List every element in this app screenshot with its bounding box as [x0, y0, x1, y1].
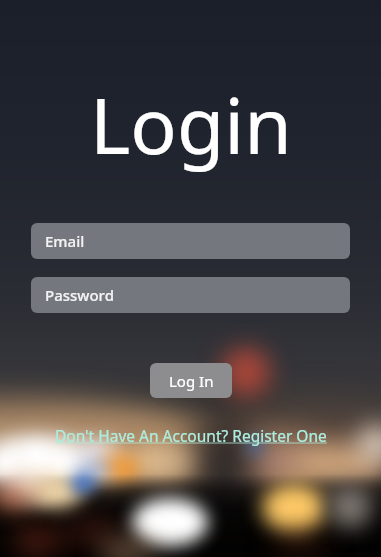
- button[interactable]: Don't Have An Account? Register One: [55, 425, 327, 446]
- button[interactable]: Password: [31, 277, 350, 313]
- staticText: Log In: [169, 371, 214, 391]
- button[interactable]: Email: [31, 223, 350, 259]
- button[interactable]: Log In: [150, 363, 232, 398]
- staticText: Password: [45, 285, 114, 305]
- staticText: Don't Have An Account? Register One: [55, 425, 327, 446]
- staticText: Email: [45, 231, 85, 251]
- staticText: Login: [90, 72, 292, 177]
